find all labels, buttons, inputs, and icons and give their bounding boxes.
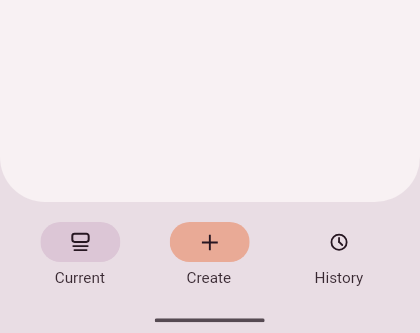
button[interactable]: Create — [145, 222, 275, 287]
staticText: History — [314, 269, 363, 287]
staticText: Current — [54, 269, 105, 287]
button[interactable]: History — [274, 222, 404, 287]
staticText: Create — [186, 269, 231, 287]
button[interactable]: Current — [15, 222, 145, 287]
